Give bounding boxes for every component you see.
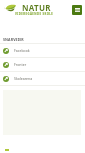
- staticText: Facebook: [14, 48, 30, 53]
- button[interactable]: Facebook: [0, 44, 85, 57]
- button[interactable]: Skolearena: [0, 72, 85, 85]
- staticText: Fronter: [14, 62, 27, 67]
- staticText: VIDEREGÅENDE SKOLE: [15, 12, 54, 16]
- staticText: SNARVEIER: [3, 37, 24, 42]
- button[interactable]: Menu: [72, 5, 82, 15]
- staticText: NATUR: [22, 2, 51, 13]
- button[interactable]: Fronter: [0, 58, 85, 71]
- staticText: Skolearena: [14, 76, 33, 81]
